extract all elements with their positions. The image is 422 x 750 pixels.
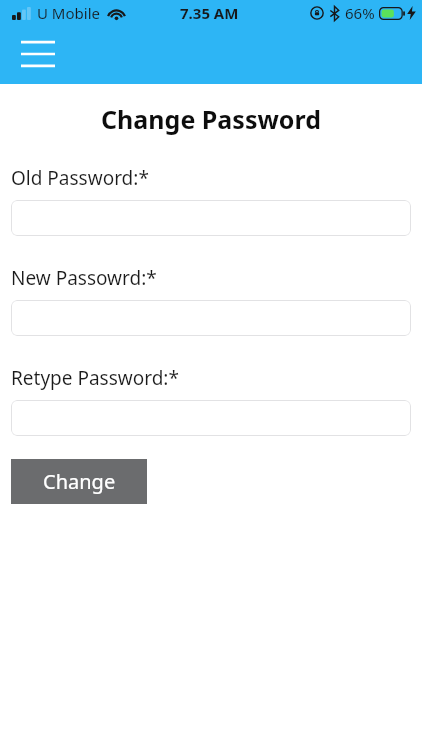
staticText: Change <box>43 468 116 495</box>
staticText: Change Password <box>0 102 422 136</box>
staticText: 66% <box>345 3 375 23</box>
button[interactable]: Change <box>11 459 147 504</box>
button[interactable]: Old Password:* <box>11 200 411 236</box>
staticText: New Passowrd:* <box>11 265 157 291</box>
staticText: 7.35 AM <box>180 3 239 23</box>
staticText: U Mobile <box>37 3 100 23</box>
button[interactable]: Retype Password:* <box>11 400 411 436</box>
staticText: Old Password:* <box>11 165 149 191</box>
button[interactable]: Open navigation menu <box>12 30 64 78</box>
button[interactable]: New Passowrd:* <box>11 300 411 336</box>
staticText: Retype Password:* <box>11 365 179 391</box>
